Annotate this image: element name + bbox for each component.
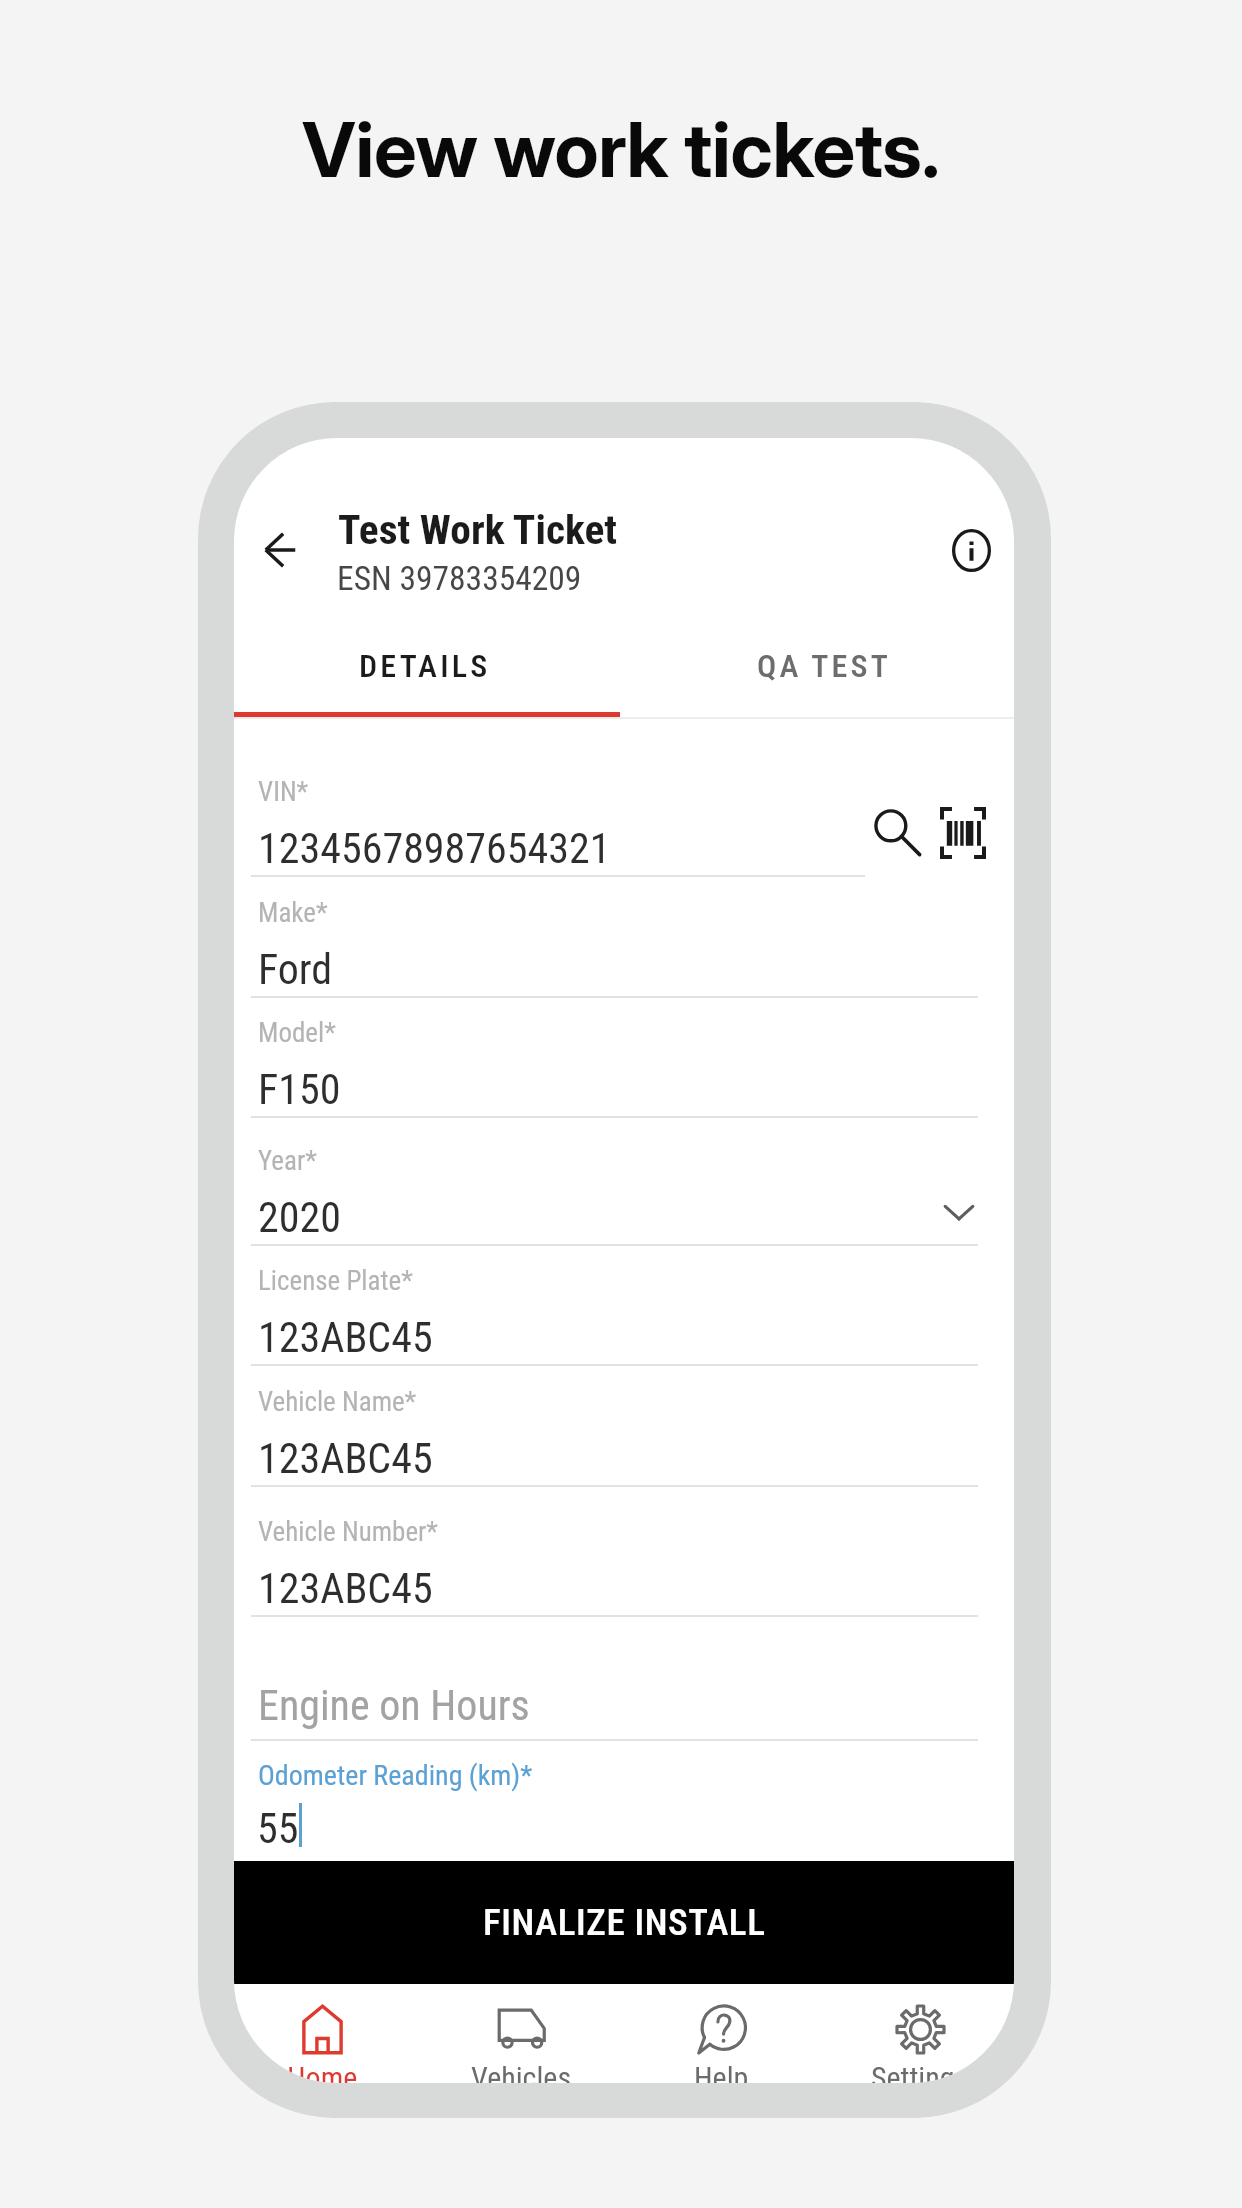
button[interactable]: Year*: [251, 1142, 978, 1246]
staticText: Make*: [258, 897, 328, 929]
staticText: Vehicles: [471, 2060, 572, 2083]
staticText: Vehicle Name*: [258, 1386, 417, 1418]
button[interactable]: Home: [234, 1984, 412, 2083]
staticText: 2020: [258, 1193, 341, 1242]
staticText: Home: [287, 2060, 358, 2083]
button[interactable]: Information: [937, 516, 1005, 584]
button[interactable]: Make*: [251, 894, 978, 998]
staticText: Year*: [258, 1145, 317, 1177]
button[interactable]: Search VIN: [868, 803, 928, 863]
staticText: 123ABC45: [258, 1564, 433, 1613]
button[interactable]: Vehicle Number*: [251, 1513, 978, 1617]
button[interactable]: FINALIZE INSTALL: [234, 1861, 1014, 1984]
button[interactable]: Help: [631, 1984, 811, 2083]
staticText: Ford: [258, 945, 333, 994]
staticText: Odometer Reading (km)*: [258, 1759, 533, 1792]
staticText: 123ABC45: [258, 1434, 433, 1483]
button[interactable]: VIN*: [251, 773, 978, 877]
staticText: Test Work Ticket: [338, 505, 618, 554]
button[interactable]: Vehicles: [431, 1984, 611, 2083]
staticText: Settings: [871, 2060, 969, 2083]
button[interactable]: Model*: [251, 1014, 978, 1118]
button[interactable]: Engine on Hours: [251, 1677, 978, 1741]
button[interactable]: Odometer Reading (km)*: [251, 1753, 978, 1857]
staticText: Model*: [258, 1017, 336, 1049]
staticText: QA TEST: [757, 647, 891, 685]
button[interactable]: Vehicle Name*: [251, 1383, 978, 1487]
staticText: Help: [694, 2060, 749, 2083]
button[interactable]: Scan barcode: [933, 803, 993, 863]
staticText: 12345678987654321: [258, 824, 611, 873]
button[interactable]: DETAILS: [234, 634, 624, 696]
button[interactable]: Select year: [924, 1182, 994, 1240]
button[interactable]: Back: [244, 514, 316, 586]
staticText: ESN 39783354209: [337, 559, 582, 598]
staticText: License Plate*: [258, 1265, 413, 1297]
staticText: VIN*: [258, 776, 309, 808]
staticText: DETAILS: [359, 647, 491, 685]
staticText: 55: [257, 1804, 299, 1853]
staticText: F150: [258, 1065, 341, 1114]
staticText: View work tickets.: [0, 103, 1242, 195]
button[interactable]: Settings: [830, 1984, 1010, 2083]
button[interactable]: License Plate*: [251, 1262, 978, 1366]
staticText: FINALIZE INSTALL: [483, 1901, 766, 1944]
button[interactable]: QA TEST: [624, 634, 1014, 696]
staticText: 123ABC45: [258, 1313, 433, 1362]
staticText: Engine on Hours: [258, 1681, 530, 1730]
staticText: Vehicle Number*: [258, 1516, 438, 1548]
